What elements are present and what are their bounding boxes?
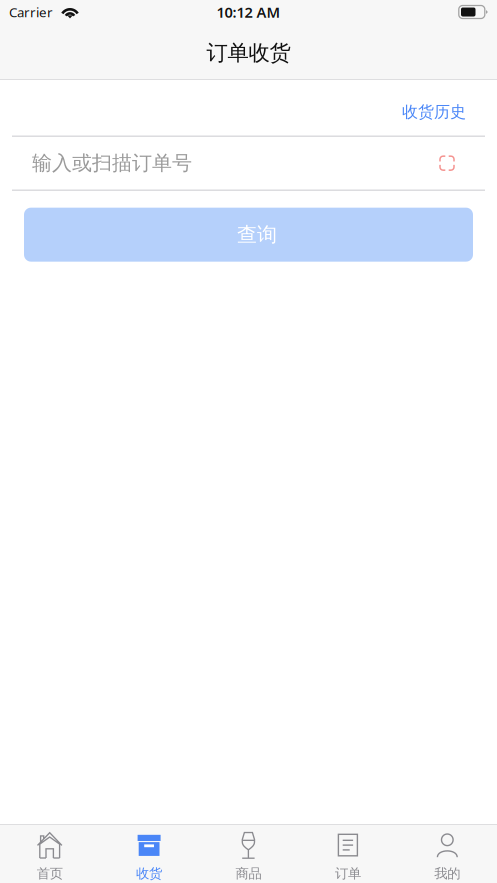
button[interactable]: 首页 (0, 824, 99, 883)
staticText: 商品 (235, 865, 261, 882)
button[interactable]: 商品 (199, 824, 298, 883)
staticText: 10:12 AM (216, 2, 280, 22)
staticText: 收货 (136, 865, 162, 882)
staticText: 订单 (335, 865, 361, 882)
staticText: 查询 (237, 222, 277, 247)
button[interactable]: 收货历史 (402, 102, 466, 122)
button[interactable]: 扫描订单号 (437, 152, 457, 174)
staticText: 订单收货 (206, 40, 290, 66)
button[interactable]: 我的 (398, 824, 497, 883)
staticText: 首页 (37, 865, 63, 882)
staticText: Carrier (9, 3, 53, 21)
button[interactable]: 订单 (298, 824, 398, 883)
staticText: 输入或扫描订单号 (32, 151, 192, 175)
staticText: 收货历史 (402, 102, 466, 122)
button[interactable]: 查询 (24, 208, 473, 262)
button[interactable]: 收货 (99, 824, 199, 883)
staticText: 我的 (434, 865, 460, 882)
